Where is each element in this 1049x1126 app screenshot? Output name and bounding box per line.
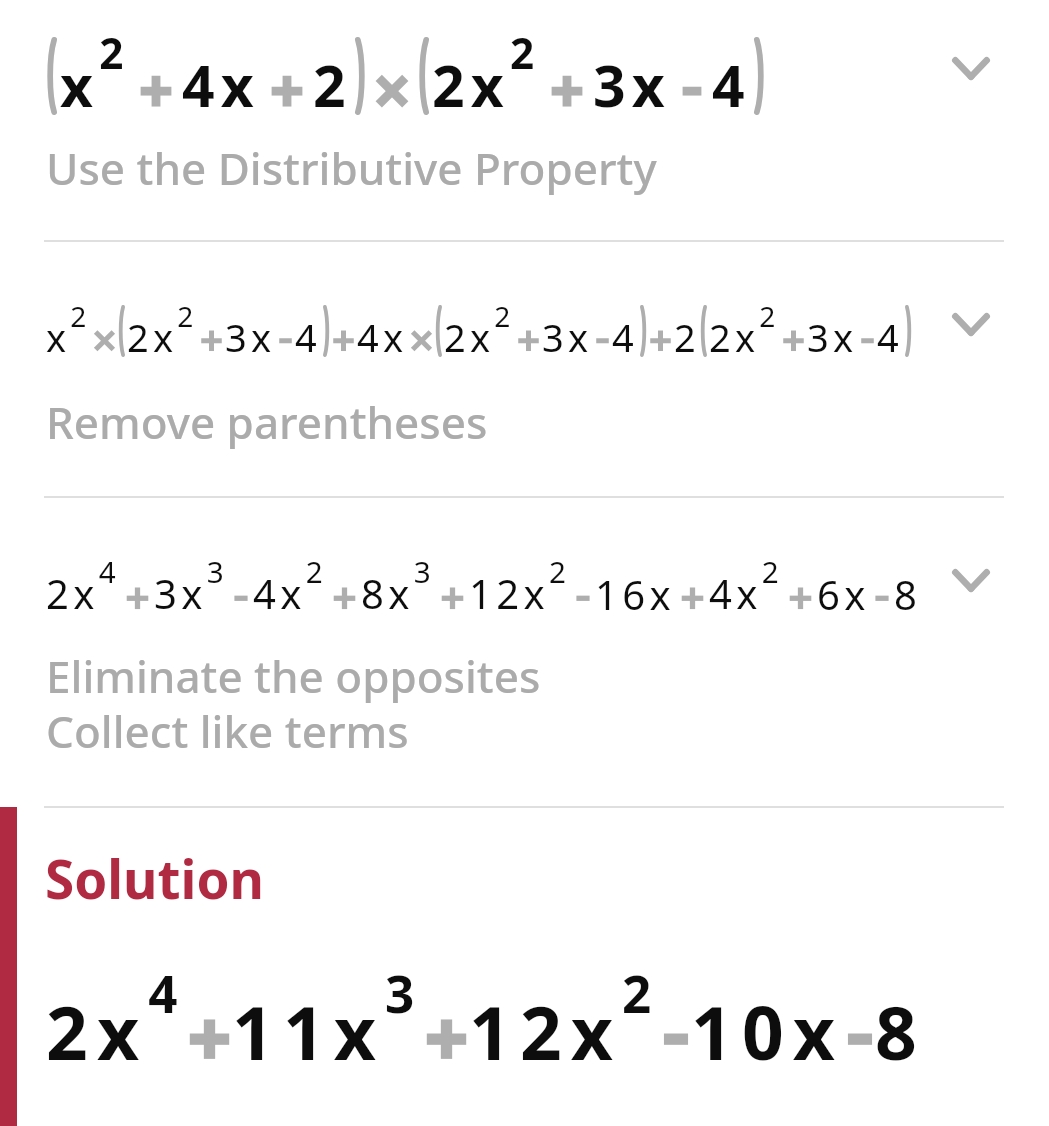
staticText: 4x2 xyxy=(253,551,328,621)
staticText xyxy=(593,311,608,363)
button[interactable] xyxy=(0,498,1049,806)
staticText: Collect like terms xyxy=(46,701,409,761)
staticText xyxy=(91,311,106,363)
staticText xyxy=(676,567,691,621)
staticText xyxy=(424,982,453,1081)
staticText: 16x xyxy=(595,567,676,621)
staticText: 4x xyxy=(357,311,408,363)
staticText: 3x xyxy=(225,311,276,363)
staticText xyxy=(261,46,283,124)
staticText xyxy=(435,311,442,363)
staticText: 12x2 xyxy=(469,958,661,1081)
staticText xyxy=(784,567,799,621)
staticText: 4 xyxy=(295,311,321,363)
staticText: 3x3 xyxy=(154,551,229,621)
staticText xyxy=(754,46,765,124)
staticText xyxy=(229,567,244,621)
staticText xyxy=(541,46,563,124)
staticText: 6x xyxy=(817,567,870,621)
staticText: 2x2 xyxy=(444,297,515,363)
staticText xyxy=(46,46,57,124)
button[interactable]: Expand step xyxy=(935,288,1007,360)
staticText xyxy=(640,311,647,363)
staticText: 12x2 xyxy=(469,551,571,621)
staticText xyxy=(330,311,345,363)
staticText xyxy=(130,46,152,124)
staticText: 2x2 xyxy=(709,297,780,363)
button[interactable] xyxy=(0,242,1049,498)
staticText: 3x xyxy=(542,311,593,363)
button[interactable]: Expand step xyxy=(935,32,1007,104)
button[interactable]: Expand step xyxy=(935,544,1007,616)
staticText: Eliminate the opposites xyxy=(46,646,541,706)
staticText: 4 xyxy=(877,311,903,363)
staticText: 8x3 xyxy=(361,551,436,621)
staticText: 8 xyxy=(875,982,926,1081)
staticText: 2x2 xyxy=(127,297,198,363)
staticText xyxy=(418,46,429,124)
staticText xyxy=(276,311,291,363)
staticText xyxy=(858,311,873,363)
staticText xyxy=(780,311,795,363)
staticText: 10x xyxy=(691,982,845,1081)
staticText: 2x2 xyxy=(432,24,541,124)
staticText: Solution xyxy=(45,842,264,914)
staticText xyxy=(436,567,451,621)
staticText xyxy=(408,311,423,363)
staticText xyxy=(870,567,885,621)
staticText: Remove parentheses xyxy=(46,392,488,452)
staticText: 4 xyxy=(712,46,751,124)
button[interactable] xyxy=(0,0,1049,242)
staticText xyxy=(515,311,530,363)
staticText xyxy=(323,311,330,363)
staticText xyxy=(355,46,366,124)
staticText: Use the Distributive Property xyxy=(46,138,657,198)
staticText: x2 xyxy=(46,297,91,363)
staticText: 4x xyxy=(182,46,261,124)
staticText xyxy=(672,46,694,124)
staticText xyxy=(700,311,707,363)
staticText: 3x xyxy=(807,311,858,363)
staticText: 4 xyxy=(612,311,638,363)
staticText xyxy=(647,311,662,363)
staticText xyxy=(118,311,125,363)
staticText: 8 xyxy=(894,567,922,621)
staticText: x2 xyxy=(60,24,130,124)
staticText: 11x3 xyxy=(232,958,424,1081)
staticText xyxy=(187,982,216,1081)
staticText: 3x xyxy=(593,46,672,124)
staticText: 2 xyxy=(674,311,700,363)
staticText: 2 xyxy=(313,46,352,124)
staticText xyxy=(328,567,343,621)
staticText xyxy=(121,567,136,621)
staticText: 2x4 xyxy=(46,551,121,621)
staticText xyxy=(198,311,213,363)
staticText: 2x4 xyxy=(46,958,187,1081)
staticText xyxy=(845,982,874,1081)
staticText xyxy=(661,982,690,1081)
staticText xyxy=(905,311,912,363)
staticText xyxy=(366,46,388,124)
staticText: 4x2 xyxy=(709,551,784,621)
staticText xyxy=(571,567,586,621)
